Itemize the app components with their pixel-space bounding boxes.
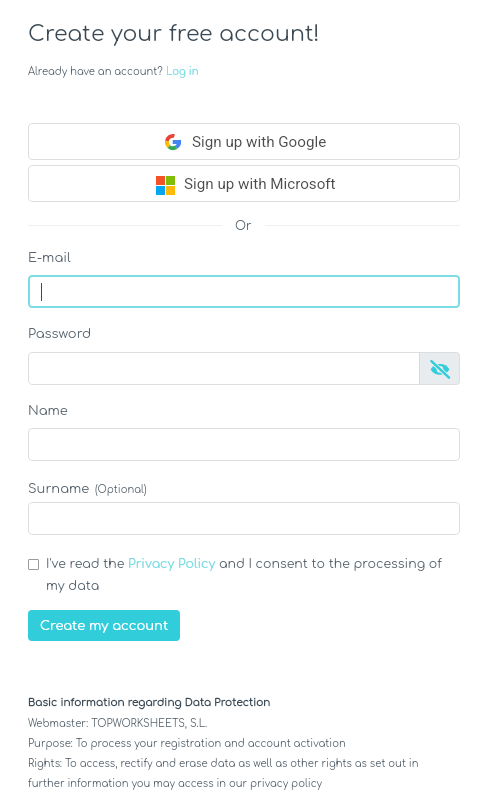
staticText: Rights: To access, rectify and erase dat… (28, 758, 428, 789)
button[interactable] (28, 428, 460, 461)
button[interactable] (28, 352, 419, 385)
staticText: Create my account (40, 619, 169, 633)
button[interactable] (28, 275, 460, 308)
button[interactable]: Show password (420, 352, 460, 385)
button[interactable]: Sign up with Microsoft (28, 165, 460, 202)
button[interactable] (28, 502, 460, 535)
button[interactable]: Sign up with Google (28, 123, 460, 160)
staticText: Sign up with Google (192, 133, 327, 151)
button[interactable]: Create my account (28, 610, 180, 641)
staticText: E-mail (28, 251, 71, 265)
button[interactable]: Accept privacy policy (28, 556, 460, 592)
button[interactable]: Log in (166, 66, 199, 77)
staticText: Webmaster: TOPWORKSHEETS, S.L. (28, 718, 208, 729)
staticText: Password (28, 327, 92, 341)
staticText: Purpose: To process your registration an… (28, 738, 346, 749)
staticText: (Optional) (95, 484, 147, 495)
other: Accept privacy policy (28, 559, 39, 570)
staticText: Sign up with Microsoft (184, 175, 336, 193)
staticText: Or (235, 219, 252, 232)
staticText: I've read the Privacy Policy and I conse… (46, 557, 460, 593)
staticText: Surname (28, 482, 90, 496)
staticText: Already have an account? (28, 66, 166, 77)
staticText: Create your free account! (28, 22, 320, 47)
staticText: Basic information regarding Data Protect… (28, 697, 271, 709)
staticText: Name (28, 404, 68, 418)
